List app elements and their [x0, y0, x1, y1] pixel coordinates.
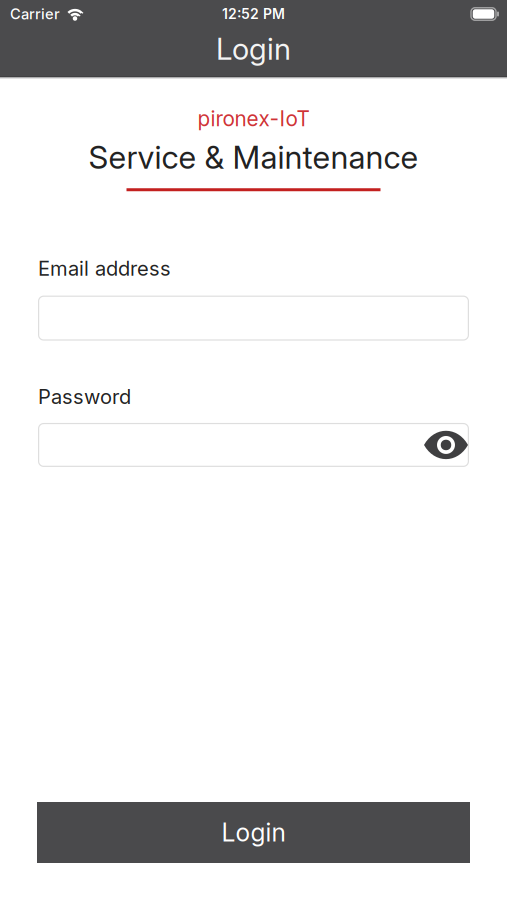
button[interactable]: Login: [37, 802, 470, 863]
staticText: Login: [216, 31, 291, 67]
staticText: Login: [221, 817, 285, 847]
staticText: Service & Maintenance: [88, 138, 418, 176]
button[interactable]: Email address: [38, 296, 469, 341]
button[interactable]: Password: [38, 423, 469, 467]
staticText: Carrier: [10, 5, 60, 23]
staticText: 12:52 PM: [222, 5, 285, 22]
staticText: pironex-IoT: [197, 106, 309, 131]
staticText: Password: [38, 385, 131, 409]
button[interactable]: Show password: [423, 423, 469, 467]
staticText: Email address: [38, 256, 171, 281]
